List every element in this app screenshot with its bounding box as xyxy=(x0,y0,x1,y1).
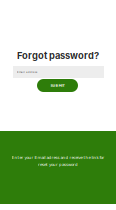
staticText: reset your password xyxy=(38,162,78,167)
staticText: Forgot password? xyxy=(17,50,99,61)
button[interactable]: SUBMIT xyxy=(37,79,78,92)
staticText: Enter your Email adress and receive the … xyxy=(11,155,104,160)
staticText: Email address xyxy=(17,70,37,73)
staticText: SUBMIT xyxy=(50,84,64,87)
